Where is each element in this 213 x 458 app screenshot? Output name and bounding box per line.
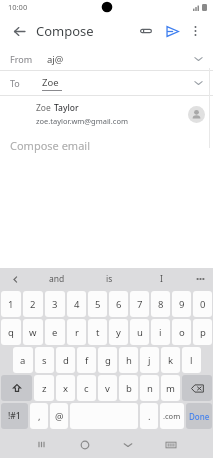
staticText: y	[116, 326, 121, 339]
staticText: g	[105, 354, 111, 367]
staticText: Zoe	[42, 76, 59, 89]
button[interactable]: From	[0, 48, 213, 70]
button[interactable]: 2	[23, 291, 43, 317]
button[interactable]: r	[67, 319, 86, 345]
button[interactable]: 5	[88, 291, 107, 317]
button[interactable]: v	[98, 375, 117, 401]
button[interactable]: 0	[193, 291, 212, 317]
button[interactable]: I	[135, 268, 187, 290]
staticText: 10:00	[8, 2, 28, 12]
staticText: a	[20, 354, 26, 367]
button[interactable]: @	[50, 403, 68, 429]
staticText: .	[148, 410, 151, 423]
button[interactable]: 3	[45, 291, 65, 317]
staticText: j	[148, 354, 151, 367]
button[interactable]: is	[83, 268, 135, 290]
button[interactable]: e	[45, 319, 65, 345]
staticText: h	[126, 354, 132, 367]
button[interactable]: 7	[130, 291, 149, 317]
button[interactable]: Back	[8, 20, 30, 42]
button[interactable]: n	[140, 375, 159, 401]
button[interactable]: 1	[1, 291, 21, 317]
staticText: d	[63, 354, 69, 367]
button[interactable]: g	[98, 347, 117, 373]
staticText: Compose	[36, 22, 94, 40]
button[interactable]: Attach file	[135, 20, 157, 42]
button[interactable]: Shift	[1, 375, 32, 401]
button[interactable]: s	[35, 347, 54, 373]
button[interactable]: Zoe	[0, 96, 213, 132]
button[interactable]: i	[151, 319, 170, 345]
staticText: p	[200, 326, 206, 339]
button[interactable]: z	[34, 375, 54, 401]
button[interactable]: f	[77, 347, 96, 373]
button[interactable]: w	[23, 319, 43, 345]
button[interactable]: Switch keyboard	[149, 431, 192, 458]
staticText: 9	[179, 298, 185, 311]
button[interactable]: 9	[172, 291, 191, 317]
button[interactable]: d	[56, 347, 75, 373]
button[interactable]: 8	[151, 291, 170, 317]
staticText: 6	[116, 298, 122, 311]
staticText: 4	[74, 298, 80, 311]
staticText: 0	[200, 298, 206, 311]
staticText: w	[29, 326, 37, 339]
staticText: From	[10, 53, 33, 65]
button[interactable]: !#1	[1, 403, 28, 429]
staticText: is	[106, 273, 113, 285]
button[interactable]: k	[161, 347, 180, 373]
button[interactable]: Backspace	[182, 375, 212, 401]
staticText: 1	[8, 298, 14, 311]
staticText: 5	[95, 298, 101, 311]
button[interactable]: 6	[109, 291, 128, 317]
button[interactable]: y	[109, 319, 128, 345]
button[interactable]: x	[56, 375, 75, 401]
button[interactable]: l	[182, 347, 201, 373]
button[interactable]: Send	[161, 20, 183, 42]
button[interactable]: Hide keyboard	[106, 431, 149, 458]
staticText: b	[126, 382, 132, 395]
button[interactable]: c	[77, 375, 96, 401]
button[interactable]: o	[172, 319, 191, 345]
button[interactable]: More options	[185, 21, 205, 41]
button[interactable]: .	[140, 403, 158, 429]
staticText: v	[105, 382, 110, 395]
button[interactable]: .com	[160, 403, 184, 429]
button[interactable]: Previous	[0, 268, 30, 290]
staticText: 3	[52, 298, 58, 311]
button[interactable]: a	[13, 347, 33, 373]
button[interactable]: h	[119, 347, 138, 373]
button[interactable]: u	[130, 319, 149, 345]
button[interactable]: j	[140, 347, 159, 373]
staticText: n	[147, 382, 153, 395]
staticText: aj@	[47, 53, 64, 66]
staticText: c	[84, 382, 89, 395]
button[interactable]: More suggestions	[187, 268, 213, 290]
button[interactable]: b	[119, 375, 138, 401]
staticText: 2	[30, 298, 36, 311]
button[interactable]: Done	[186, 403, 212, 429]
staticText: i	[159, 326, 162, 339]
button[interactable]: t	[88, 319, 107, 345]
staticText: Zoe	[36, 102, 54, 114]
button[interactable]: p	[193, 319, 212, 345]
button[interactable]: 4	[67, 291, 86, 317]
button[interactable]: and	[30, 268, 83, 290]
staticText: u	[137, 326, 143, 339]
staticText: ,	[38, 410, 41, 423]
staticText: .com	[163, 411, 181, 421]
button[interactable]: m	[161, 375, 180, 401]
button[interactable]: ,	[30, 403, 48, 429]
staticText: m	[166, 382, 175, 395]
button[interactable]: To	[0, 71, 213, 95]
staticText: @	[55, 410, 64, 423]
staticText: I	[160, 273, 163, 285]
button[interactable]: Recents	[20, 431, 63, 458]
staticText: l	[190, 354, 193, 367]
staticText: and	[49, 273, 65, 285]
staticText: x	[63, 382, 69, 395]
button[interactable]: Home	[63, 431, 106, 458]
button[interactable]: q	[1, 319, 21, 345]
staticText: z	[42, 382, 47, 395]
